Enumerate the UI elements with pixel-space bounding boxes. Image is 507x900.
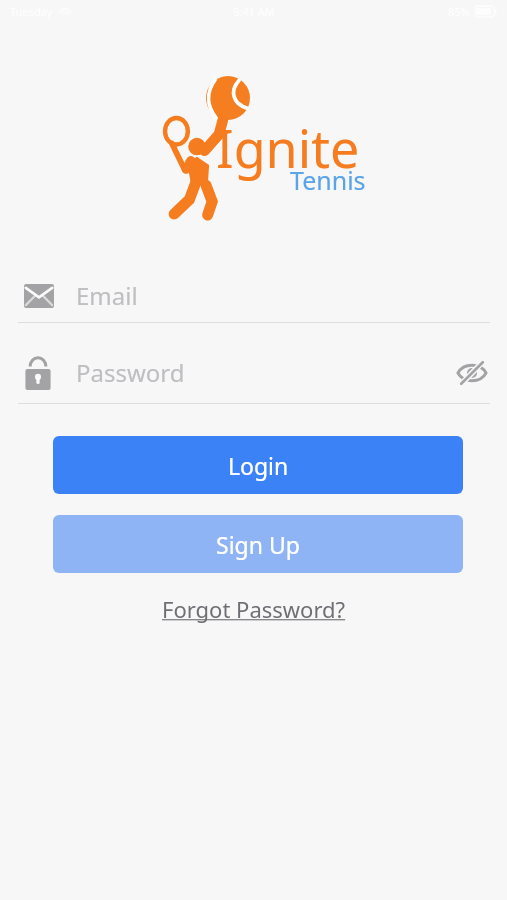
staticText: Sign Up <box>216 529 300 560</box>
button[interactable]: Password <box>0 345 507 400</box>
staticText: Password <box>76 356 185 389</box>
staticText: Ignite <box>216 112 360 183</box>
staticText: Email <box>76 279 138 312</box>
staticText: Tennis <box>290 163 366 197</box>
button[interactable]: Email <box>0 268 507 323</box>
button[interactable]: Forgot Password? <box>156 592 352 626</box>
staticText: Login <box>228 450 289 481</box>
button[interactable]: Sign Up <box>53 515 463 573</box>
button[interactable]: Show password <box>449 350 495 396</box>
staticText: Forgot Password? <box>162 594 346 624</box>
button[interactable]: Login <box>53 436 463 494</box>
